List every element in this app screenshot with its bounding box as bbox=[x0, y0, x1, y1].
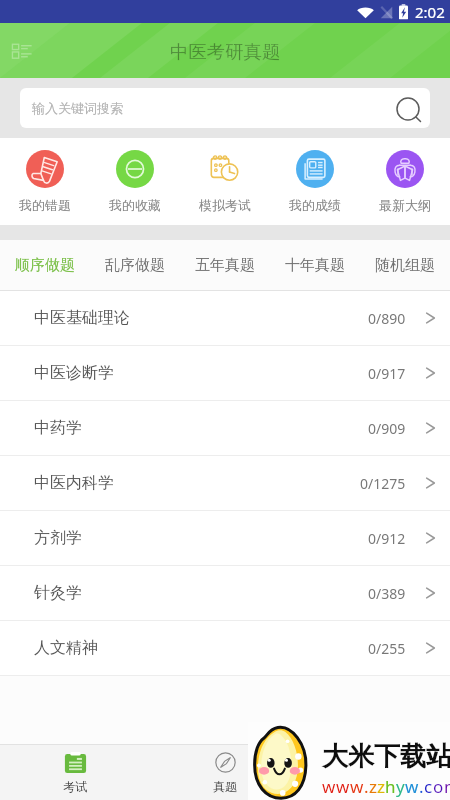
staticText: 五年真题 bbox=[195, 256, 255, 275]
staticText: 中医内科学 bbox=[34, 473, 114, 493]
staticText: z bbox=[377, 775, 385, 798]
staticText: . bbox=[419, 775, 424, 798]
button[interactable]: 十年真题 bbox=[270, 240, 360, 290]
button[interactable]: Menu bbox=[11, 39, 35, 63]
staticText: o bbox=[433, 775, 444, 798]
button[interactable]: 我的收藏 bbox=[90, 138, 180, 225]
staticText: w bbox=[336, 775, 350, 798]
button[interactable]: 中药学 bbox=[0, 401, 450, 455]
staticText: m bbox=[444, 775, 450, 798]
staticText: 0/255 bbox=[368, 639, 406, 658]
button[interactable]: 方剂学 bbox=[0, 511, 450, 565]
staticText: 中医诊断学 bbox=[34, 363, 114, 383]
staticText: 输入关键词搜索 bbox=[32, 100, 123, 116]
button[interactable]: 中医基础理论 bbox=[0, 291, 450, 345]
button[interactable]: 中医内科学 bbox=[0, 456, 450, 510]
staticText: 0/909 bbox=[368, 419, 406, 438]
staticText: 我的成绩 bbox=[289, 197, 341, 213]
button[interactable]: 乱序做题 bbox=[90, 240, 180, 290]
staticText: 最新大纲 bbox=[379, 197, 431, 213]
staticText: w bbox=[350, 775, 364, 798]
button[interactable]: 最新大纲 bbox=[360, 138, 450, 225]
button[interactable]: 针灸学 bbox=[0, 566, 450, 620]
button[interactable]: 输入关键词搜索 bbox=[20, 88, 430, 128]
button[interactable]: 顺序做题 bbox=[0, 240, 90, 290]
staticText: . bbox=[364, 775, 369, 798]
button[interactable]: 模拟考试 bbox=[180, 138, 270, 225]
staticText: 中药学 bbox=[34, 418, 82, 438]
staticText: 我的错题 bbox=[19, 197, 71, 213]
staticText: w bbox=[322, 775, 336, 798]
staticText: w bbox=[405, 775, 419, 798]
staticText: 考试 bbox=[63, 779, 87, 794]
staticText: 真题 bbox=[213, 779, 237, 794]
staticText: 0/1275 bbox=[360, 474, 406, 493]
staticText: 乱序做题 bbox=[105, 256, 165, 275]
staticText: 方剂学 bbox=[34, 528, 82, 548]
button[interactable]: 五年真题 bbox=[180, 240, 270, 290]
staticText: 0/912 bbox=[368, 529, 406, 548]
staticText: 顺序做题 bbox=[15, 256, 75, 275]
staticText: h bbox=[385, 775, 396, 798]
staticText: 我的收藏 bbox=[109, 197, 161, 213]
staticText: 0/890 bbox=[368, 309, 406, 328]
button[interactable]: 人文精神 bbox=[0, 621, 450, 675]
staticText: 针灸学 bbox=[34, 583, 82, 603]
staticText: c bbox=[424, 775, 433, 798]
staticText: 大米下载站 bbox=[322, 740, 450, 773]
button[interactable]: 我的错题 bbox=[0, 138, 90, 225]
staticText: 随机组题 bbox=[375, 256, 435, 275]
button[interactable]: 考试 bbox=[0, 745, 150, 800]
staticText: 人文精神 bbox=[34, 638, 98, 658]
staticText: 0/917 bbox=[368, 364, 406, 383]
button[interactable]: 我的成绩 bbox=[270, 138, 360, 225]
staticText: 0/389 bbox=[368, 584, 406, 603]
staticText: 模拟考试 bbox=[199, 197, 251, 213]
button[interactable]: 中医诊断学 bbox=[0, 346, 450, 400]
staticText: y bbox=[396, 775, 405, 798]
staticText: 中医基础理论 bbox=[34, 308, 130, 328]
button[interactable]: 真题 bbox=[150, 745, 300, 800]
button[interactable]: 我的 bbox=[300, 745, 450, 800]
staticText: 中医考研真题 bbox=[170, 40, 281, 63]
staticText: 我的 bbox=[363, 779, 387, 794]
staticText: 十年真题 bbox=[285, 256, 345, 275]
staticText: 2:02 bbox=[415, 2, 445, 22]
staticText: z bbox=[369, 775, 377, 798]
button[interactable]: 随机组题 bbox=[360, 240, 450, 290]
